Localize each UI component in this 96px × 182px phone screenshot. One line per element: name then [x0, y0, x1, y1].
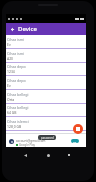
staticText: 128,0 GB: [7, 124, 22, 129]
staticText: 64 GB: [7, 110, 17, 115]
staticText: Device: [18, 25, 37, 33]
staticText: account@gmail.com: [16, 139, 46, 143]
staticText: Cihaz depo: [7, 78, 26, 83]
staticText: 1234: [7, 69, 15, 74]
staticText: Orta: [7, 97, 15, 102]
button[interactable]: Cihaz depo: [6, 62, 86, 76]
staticText: OK: [73, 140, 77, 143]
staticText: Cihaz depo: [7, 64, 26, 69]
button[interactable]: Home: [42, 149, 54, 161]
button[interactable]: Cihaz bellegi: [6, 103, 86, 117]
staticText: Cihaz ismi: [7, 37, 24, 42]
staticText: Cihaz ismi: [7, 51, 24, 56]
staticText: Cihaz islemci: [7, 119, 29, 124]
button[interactable]: Add: [73, 124, 83, 134]
staticText: Cihaz bellegi: [7, 105, 29, 110]
button[interactable]: Cihaz ismi: [6, 49, 86, 63]
button[interactable]: Suggestion: [38, 135, 56, 140]
staticText: password: [41, 136, 54, 140]
button[interactable]: Back: [19, 149, 31, 161]
staticText: A20: [7, 56, 14, 61]
staticText: Ev: [7, 42, 11, 47]
button[interactable]: Cihaz islemci: [6, 117, 86, 131]
button[interactable]: OK: [71, 139, 79, 143]
staticText: Google Play: [19, 143, 36, 147]
button[interactable]: Cihaz bellegi: [6, 90, 86, 104]
button[interactable]: Back: [6, 23, 18, 35]
staticText: Ev: [7, 83, 11, 88]
button[interactable]: Cihaz ismi: [6, 35, 86, 49]
button[interactable]: Cihaz depo: [6, 76, 86, 90]
button[interactable]: Recents: [63, 149, 75, 161]
staticText: Cihaz bellegi: [7, 92, 29, 97]
